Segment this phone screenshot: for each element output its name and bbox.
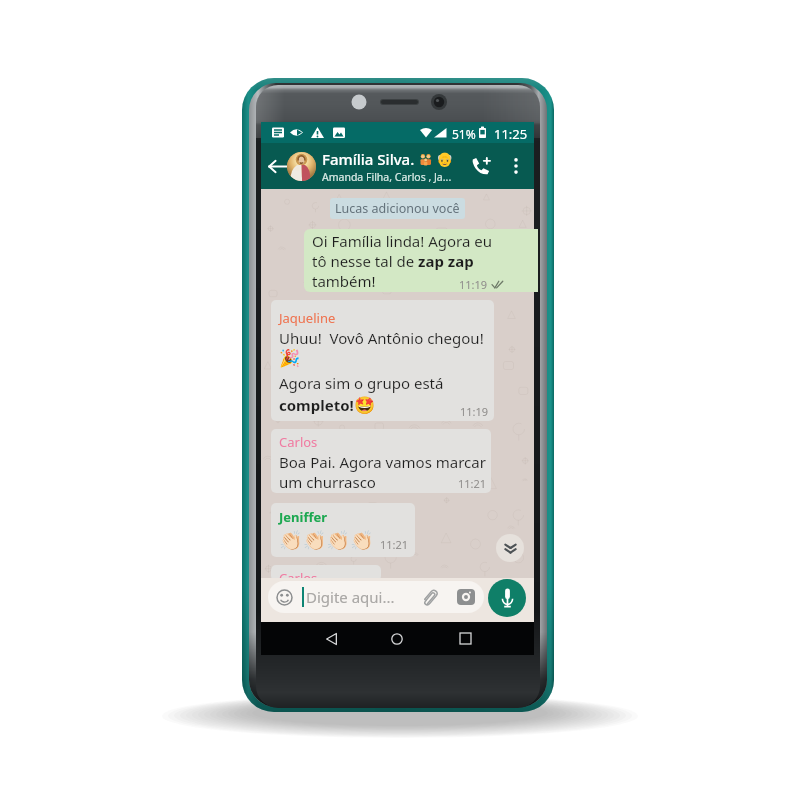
button[interactable]: Record voice message bbox=[488, 579, 526, 617]
staticText: Carlos bbox=[279, 433, 318, 451]
staticText: 11:21 bbox=[458, 476, 487, 491]
button[interactable]: Jeniffer bbox=[271, 503, 415, 557]
staticText: 11:21 bbox=[380, 537, 409, 552]
button[interactable]: Lucas adicionou você bbox=[330, 198, 465, 219]
button[interactable]: Back bbox=[315, 622, 347, 655]
staticText: Jeniffer bbox=[279, 508, 328, 526]
button[interactable]: More options bbox=[504, 143, 528, 189]
staticText: Digite aqui... bbox=[306, 587, 395, 607]
staticText: Carlos bbox=[279, 569, 318, 581]
staticText: Uhuu! Vovô Antônio chegou! bbox=[279, 328, 484, 348]
button[interactable]: Família Silva. bbox=[287, 143, 472, 189]
staticText: Amanda Filha, Carlos , Ja... bbox=[322, 170, 452, 184]
button[interactable]: Home bbox=[381, 622, 413, 655]
button[interactable]: Scroll to bottom bbox=[496, 534, 524, 562]
staticText: 51% bbox=[452, 126, 476, 142]
staticText: 🤩 bbox=[354, 395, 376, 415]
button[interactable]: Oi Família linda! Agora eu tô nesse tal … bbox=[304, 229, 538, 292]
button[interactable]: Jaqueline bbox=[271, 300, 494, 421]
staticText: Jaqueline bbox=[279, 309, 336, 327]
button[interactable]: Recent apps bbox=[449, 622, 481, 655]
staticText: 11:19 bbox=[459, 277, 488, 292]
staticText: Lucas adicionou você bbox=[335, 200, 460, 217]
staticText: Boa Pai. Agora vamos marcar um churrasco bbox=[279, 452, 487, 492]
staticText: completo! bbox=[279, 395, 354, 415]
button[interactable]: Carlos bbox=[271, 429, 491, 493]
staticText: 11:19 bbox=[460, 404, 489, 419]
button[interactable]: Carlos bbox=[271, 565, 381, 581]
button[interactable]: Digite aqui... bbox=[268, 581, 484, 613]
staticText: 👏🏻👏🏻👏🏻👏🏻 bbox=[279, 529, 374, 551]
staticText: 11:25 bbox=[494, 125, 528, 143]
button[interactable]: Back bbox=[263, 143, 291, 189]
staticText: Oi Família linda! Agora eu tô nesse tal … bbox=[312, 231, 502, 291]
button[interactable]: Add participant call bbox=[466, 143, 496, 189]
staticText: 🎉 bbox=[279, 348, 301, 368]
staticText: Agora sim o grupo está bbox=[279, 373, 444, 393]
staticText: 👴 bbox=[436, 151, 454, 167]
staticText: Família Silva. bbox=[322, 149, 415, 169]
